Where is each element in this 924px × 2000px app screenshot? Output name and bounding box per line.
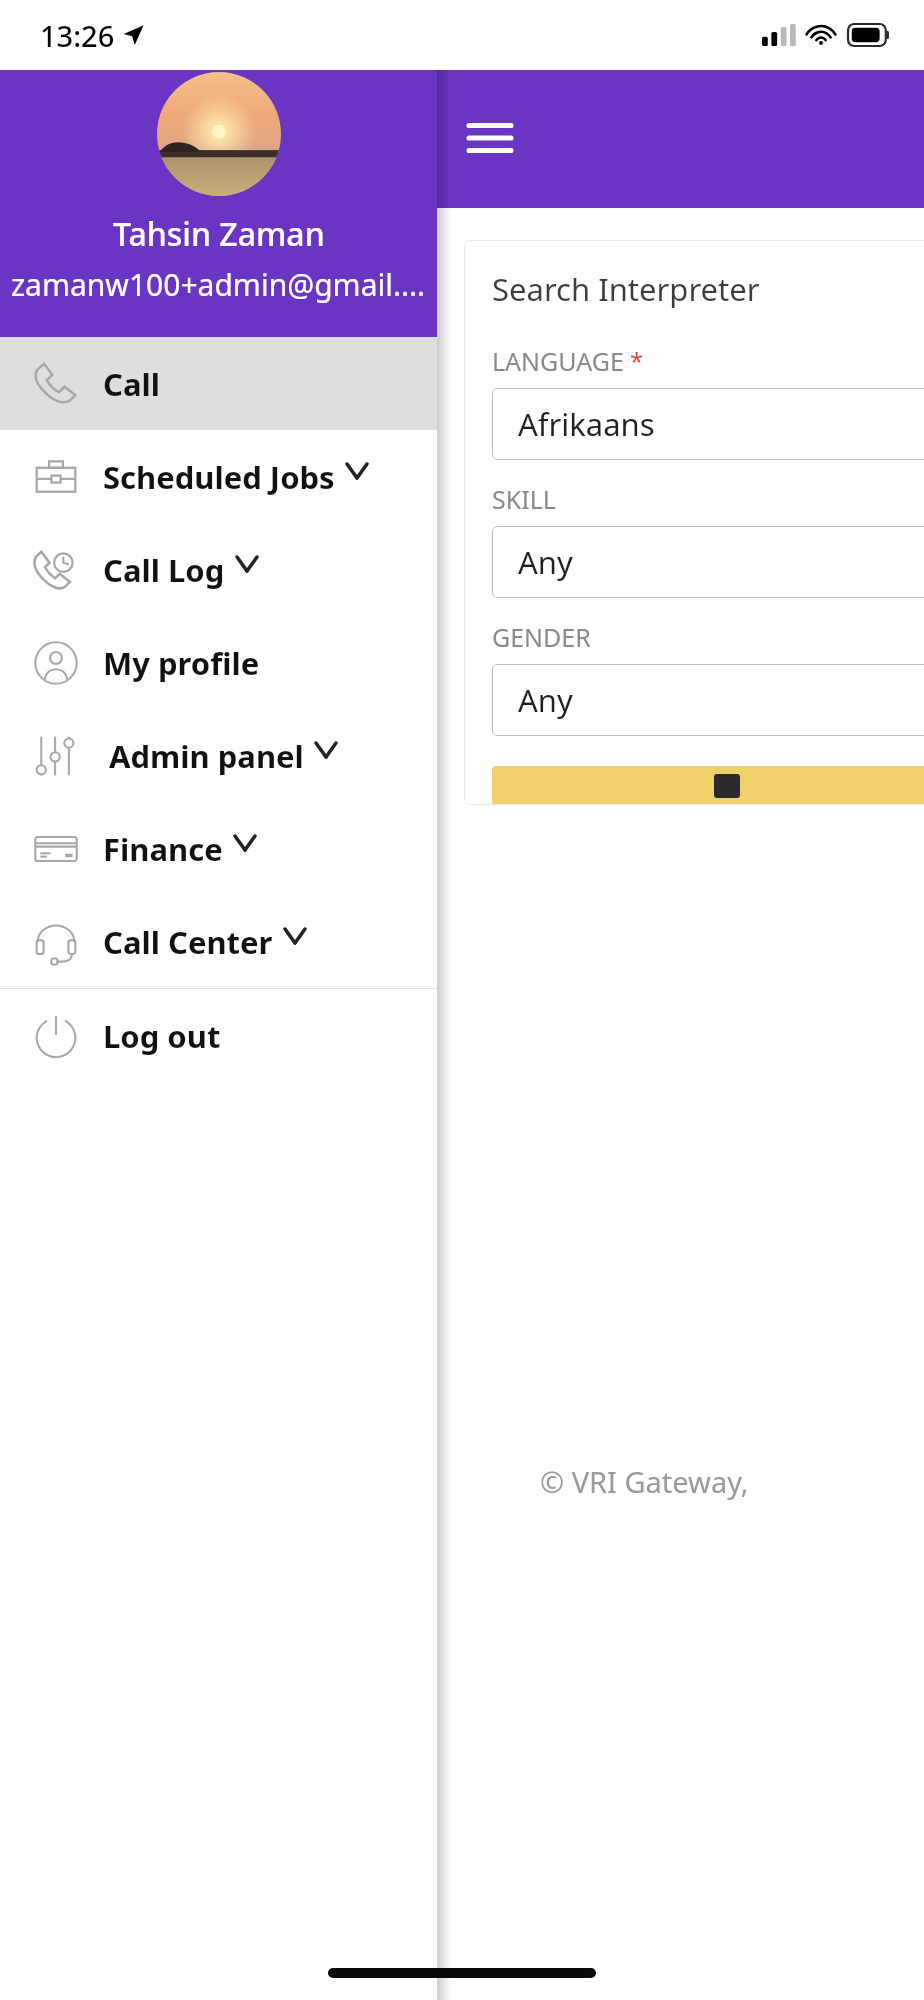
staticText: Tahsin Zaman: [113, 212, 325, 256]
staticText: Log out: [103, 1015, 221, 1057]
button[interactable]: Call Center: [0, 895, 437, 988]
button[interactable]: Scheduled Jobs: [0, 430, 437, 523]
button[interactable]: Call Log: [0, 523, 437, 616]
staticText: Scheduled Jobs: [103, 456, 335, 498]
staticText: Any: [518, 679, 573, 721]
staticText: LANGUAGE: [492, 344, 624, 378]
button[interactable]: Finance: [0, 802, 437, 895]
button[interactable]: Admin panel: [0, 709, 437, 802]
staticText: GENDER: [492, 620, 591, 654]
button[interactable]: Profile photo: [157, 72, 281, 196]
staticText: © VRI Gateway,: [540, 1462, 749, 1501]
staticText: Call Log: [103, 549, 225, 591]
staticText: Admin panel: [109, 735, 304, 777]
button[interactable]: Afrikaans: [492, 388, 924, 460]
staticText: Call: [103, 363, 160, 405]
staticText: *: [630, 344, 644, 377]
staticText: zamanw100+admin@gmail....: [11, 264, 426, 305]
button[interactable]: Any: [492, 526, 924, 598]
button[interactable]: Call: [0, 337, 437, 430]
staticText: 13:26: [40, 16, 115, 55]
button[interactable]: Log out: [0, 989, 437, 1082]
button[interactable]: [492, 766, 924, 805]
staticText: SKILL: [492, 482, 556, 516]
staticText: Afrikaans: [518, 403, 655, 445]
staticText: My profile: [103, 642, 260, 684]
staticText: Call Center: [103, 921, 273, 963]
button[interactable]: Any: [492, 664, 924, 736]
staticText: Finance: [103, 828, 223, 870]
button[interactable]: My profile: [0, 616, 437, 709]
staticText: Search Interpreter: [492, 268, 760, 310]
button[interactable]: Open navigation menu: [452, 100, 528, 176]
staticText: Any: [518, 541, 573, 583]
